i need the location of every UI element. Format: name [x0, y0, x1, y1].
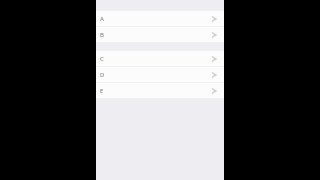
staticText: E: [100, 87, 104, 95]
other: Open E: [211, 87, 219, 95]
other: Open A: [211, 15, 219, 23]
staticText: D: [100, 71, 105, 79]
staticText: B: [100, 31, 104, 39]
staticText: A: [100, 15, 104, 23]
button[interactable]: A: [96, 11, 224, 26]
other: Open D: [211, 71, 219, 79]
button[interactable]: C: [96, 51, 224, 66]
other: Open B: [211, 31, 219, 39]
other: Open C: [211, 55, 219, 63]
button[interactable]: E: [96, 83, 224, 98]
button[interactable]: D: [96, 67, 224, 82]
staticText: C: [100, 55, 104, 63]
button[interactable]: B: [96, 27, 224, 42]
